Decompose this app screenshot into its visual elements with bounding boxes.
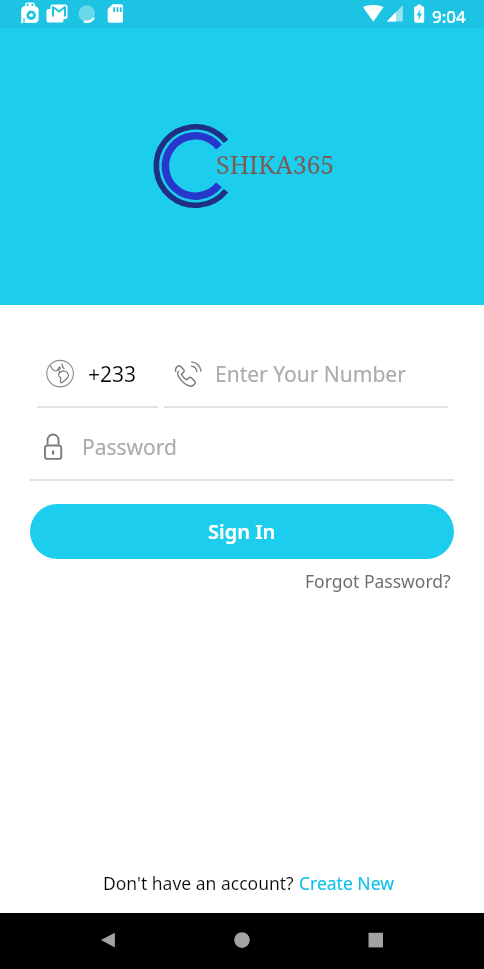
button[interactable]: Password <box>30 423 454 481</box>
staticText: Forgot Password? <box>305 569 451 593</box>
button[interactable]: Recent apps <box>343 913 409 969</box>
staticText: +233 <box>88 360 137 389</box>
button[interactable]: Enter Your Number <box>164 348 448 408</box>
staticText: Password <box>82 433 177 462</box>
button[interactable]: Sign In <box>30 504 454 559</box>
staticText: Sign In <box>208 518 276 545</box>
staticText: Create New <box>299 871 394 895</box>
staticText: SHIKA365 <box>216 147 335 181</box>
button[interactable]: Forgot Password? <box>299 566 457 596</box>
staticText: Enter Your Number <box>215 360 406 389</box>
staticText: Don't have an account? <box>103 871 299 895</box>
button[interactable]: Home <box>209 913 275 969</box>
button[interactable]: Create New <box>299 871 394 895</box>
staticText: 9:04 <box>432 5 466 28</box>
button[interactable]: Back <box>75 913 141 969</box>
button[interactable]: Country code +233 <box>30 348 158 408</box>
